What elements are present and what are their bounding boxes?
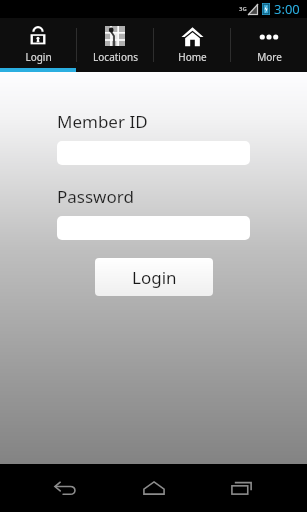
staticText: Locations: [93, 50, 138, 64]
staticText: 3:00: [274, 0, 300, 18]
other: Home: [181, 25, 204, 48]
button[interactable]: More: [231, 18, 307, 72]
button[interactable]: [57, 216, 250, 240]
button[interactable]: Login: [95, 258, 213, 296]
button[interactable]: Locations: [77, 18, 153, 72]
staticText: Member ID: [57, 110, 148, 133]
other: More: [257, 26, 281, 46]
staticText: Login: [25, 50, 52, 64]
button[interactable]: Home: [154, 18, 230, 72]
staticText: Password: [57, 185, 134, 208]
button[interactable]: Recent apps: [218, 464, 266, 512]
staticText: Home: [178, 50, 207, 64]
button[interactable]: Login: [0, 18, 76, 72]
staticText: 3G: [239, 5, 247, 13]
other: Login: [27, 25, 49, 47]
button[interactable]: Home: [130, 464, 178, 512]
staticText: More: [257, 50, 282, 64]
staticText: Login: [132, 266, 177, 289]
other: Locations: [105, 26, 125, 46]
button[interactable]: Back: [41, 464, 89, 512]
